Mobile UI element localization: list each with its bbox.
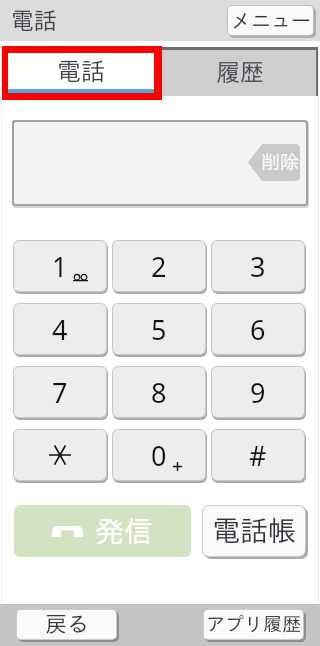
button[interactable]: 戻る bbox=[17, 610, 116, 639]
staticText: 5 bbox=[151, 311, 167, 348]
staticText: 削除 bbox=[261, 152, 299, 171]
staticText: メニュー bbox=[231, 10, 311, 30]
staticText: # bbox=[249, 437, 267, 474]
button[interactable]: 2 bbox=[113, 241, 205, 291]
button[interactable]: 1 bbox=[14, 241, 106, 291]
staticText: 7 bbox=[52, 374, 68, 411]
staticText: 6 bbox=[250, 311, 266, 348]
button[interactable]: 電話 bbox=[1, 46, 162, 100]
staticText: アプリ履歴 bbox=[206, 614, 301, 633]
staticText: 戻る bbox=[45, 613, 89, 635]
staticText: 0 bbox=[151, 437, 167, 474]
button[interactable]: 4 bbox=[14, 304, 106, 354]
button[interactable]: 3 bbox=[212, 241, 304, 291]
staticText: 電話 bbox=[57, 59, 105, 83]
staticText: 1 bbox=[52, 248, 68, 285]
staticText: 履歴 bbox=[216, 60, 264, 84]
staticText: 電話 bbox=[11, 9, 57, 32]
button[interactable]: 発信 bbox=[14, 505, 191, 557]
staticText: 2 bbox=[151, 248, 167, 285]
staticText: 発信 bbox=[95, 516, 153, 545]
button[interactable]: 5 bbox=[113, 304, 205, 354]
button[interactable]: アプリ履歴 bbox=[204, 610, 303, 639]
button[interactable]: 削除 bbox=[248, 144, 300, 181]
button[interactable]: 6 bbox=[212, 304, 304, 354]
staticText: 8 bbox=[151, 374, 167, 411]
button[interactable]: 8 bbox=[113, 367, 205, 417]
button[interactable]: メニュー bbox=[228, 6, 313, 35]
staticText: 3 bbox=[250, 248, 266, 285]
button[interactable]: 電話帳 bbox=[203, 506, 305, 556]
button[interactable]: # bbox=[212, 430, 304, 480]
button[interactable]: 7 bbox=[14, 367, 106, 417]
button[interactable]: 0 bbox=[113, 430, 205, 480]
button[interactable] bbox=[14, 430, 106, 480]
staticText: 電話帳 bbox=[212, 516, 296, 544]
button[interactable]: 履歴 bbox=[162, 50, 316, 96]
button[interactable]: 9 bbox=[212, 367, 304, 417]
staticText: 4 bbox=[52, 311, 68, 348]
staticText: 9 bbox=[250, 374, 266, 411]
